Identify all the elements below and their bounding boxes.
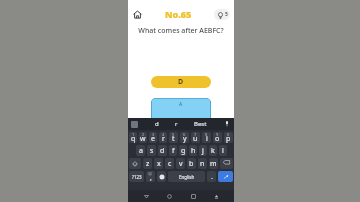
button[interactable]: 7 <box>191 132 200 143</box>
staticText: p <box>226 134 231 143</box>
staticText: a <box>139 146 143 156</box>
staticText: s <box>150 146 154 156</box>
staticText: o <box>215 134 220 143</box>
staticText: q <box>131 134 136 143</box>
button[interactable]: Recent apps <box>188 191 198 201</box>
button[interactable]: 0 <box>224 132 233 143</box>
button[interactable] <box>218 171 233 182</box>
button[interactable]: c <box>165 158 174 169</box>
staticText: 0 <box>227 132 230 137</box>
button[interactable]: j <box>199 145 207 156</box>
staticText: r <box>162 134 165 143</box>
button[interactable]: h <box>189 145 197 156</box>
staticText: d <box>160 146 165 156</box>
staticText: l <box>222 146 224 156</box>
button[interactable]: 4 <box>159 132 167 143</box>
button[interactable]: f <box>169 145 177 156</box>
button[interactable]: English <box>168 171 205 182</box>
staticText: What comes after AEBFC? <box>134 26 228 36</box>
button[interactable]: Hint <box>214 9 230 20</box>
button[interactable]: A <box>151 98 211 118</box>
staticText: . <box>211 172 213 182</box>
button[interactable]: v <box>176 158 185 169</box>
staticText: 4 <box>162 132 165 137</box>
staticText: g <box>181 146 186 156</box>
button[interactable]: x <box>154 158 163 169</box>
staticText: 8 <box>205 132 208 137</box>
staticText: 9 <box>216 132 219 137</box>
staticText: m <box>210 159 217 169</box>
button[interactable]: z <box>143 158 152 169</box>
button[interactable]: g <box>179 145 187 156</box>
staticText: 5 <box>172 132 175 137</box>
staticText: 7 <box>194 132 197 137</box>
other: Hint <box>216 11 224 19</box>
staticText: 6 <box>183 132 186 137</box>
staticText: 2 <box>142 132 145 137</box>
staticText: , <box>150 173 152 182</box>
button[interactable]: n <box>198 158 207 169</box>
staticText: z <box>146 159 150 169</box>
button[interactable]: k <box>209 145 217 156</box>
button[interactable]: d <box>155 120 159 128</box>
staticText: w <box>140 134 146 143</box>
button[interactable]: Back <box>141 191 151 201</box>
staticText: English <box>179 174 195 180</box>
button[interactable]: s <box>147 145 156 156</box>
button[interactable]: a <box>136 145 145 156</box>
button[interactable]: 1 <box>129 132 137 143</box>
staticText: n <box>200 159 205 169</box>
button[interactable]: . <box>207 171 216 182</box>
button[interactable]: 8 <box>202 132 211 143</box>
staticText: y <box>183 134 187 143</box>
staticText: No.65 <box>165 8 192 20</box>
staticText: c <box>168 159 172 169</box>
button[interactable]: Home <box>132 9 143 20</box>
button[interactable]: 5 <box>169 132 178 143</box>
staticText: u <box>193 134 198 143</box>
staticText: k <box>211 146 215 156</box>
button[interactable]: m <box>209 158 218 169</box>
button[interactable]: ☺ <box>146 171 155 182</box>
button[interactable]: D <box>151 76 211 88</box>
button[interactable]: Clipboard <box>131 121 138 128</box>
staticText: j <box>202 146 204 156</box>
button[interactable] <box>157 171 166 182</box>
staticText: e <box>151 134 155 143</box>
staticText: b <box>189 159 194 169</box>
button[interactable]: d <box>158 145 167 156</box>
staticText: i <box>206 134 208 143</box>
button[interactable]: 6 <box>180 132 189 143</box>
button[interactable]: 9 <box>213 132 222 143</box>
button[interactable]: 2 <box>139 132 147 143</box>
staticText: 5 <box>225 11 228 18</box>
button[interactable]: Voice input <box>223 120 231 128</box>
staticText: A <box>179 101 183 108</box>
staticText: v <box>179 159 183 169</box>
button[interactable]: Best <box>194 120 207 128</box>
staticText: D <box>178 77 184 87</box>
staticText: 1 <box>132 132 135 137</box>
staticText: 3 <box>152 132 155 137</box>
button[interactable]: 3 <box>149 132 157 143</box>
staticText: ☺ <box>148 171 153 176</box>
staticText: f <box>172 146 175 156</box>
button[interactable]: l <box>219 145 227 156</box>
button[interactable] <box>220 158 233 169</box>
button[interactable]: ?123 <box>129 171 144 182</box>
button[interactable]: r <box>175 120 178 128</box>
button[interactable] <box>129 158 141 169</box>
button[interactable]: Hide keyboard <box>211 191 221 201</box>
staticText: t <box>172 134 175 143</box>
staticText: h <box>191 146 196 156</box>
button[interactable]: b <box>187 158 196 169</box>
staticText: ?123 <box>132 174 142 180</box>
button[interactable]: Home <box>164 191 174 201</box>
staticText: x <box>157 159 161 169</box>
